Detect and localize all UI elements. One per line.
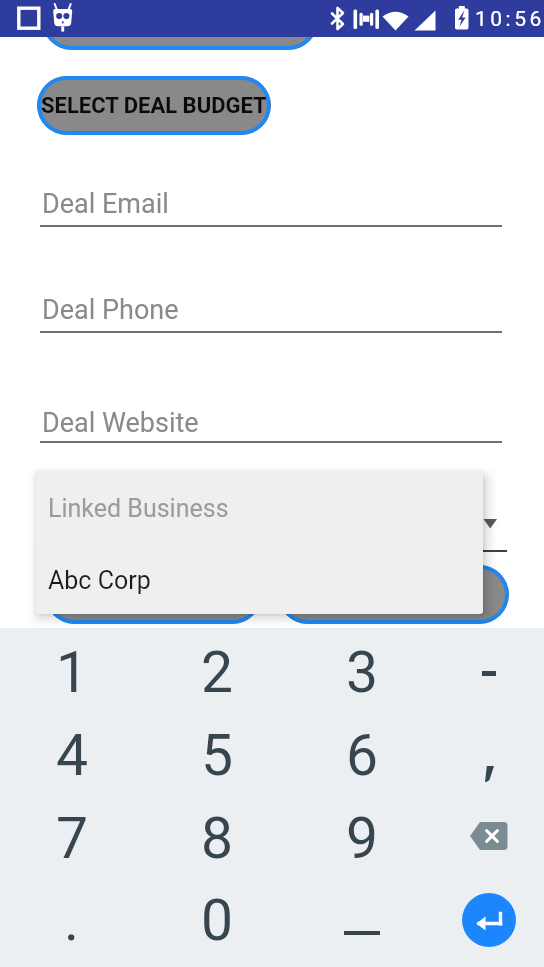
staticText: Linked Business: [48, 494, 229, 523]
staticText: 7: [56, 805, 89, 872]
button[interactable]: [42, 0, 318, 50]
button[interactable]: 7: [17, 796, 127, 880]
staticText: Deal Email: [42, 188, 169, 220]
button[interactable]: 9: [307, 796, 417, 880]
button[interactable]: SELECT DEAL BUDGET: [37, 76, 271, 135]
staticText: 10:56: [475, 7, 544, 32]
staticText: 8: [201, 805, 234, 872]
staticText: 0: [201, 887, 234, 954]
button[interactable]: [434, 713, 544, 797]
button[interactable]: 3: [307, 630, 417, 714]
staticText: 4: [56, 722, 89, 789]
staticText: 5: [201, 722, 234, 789]
button[interactable]: [278, 565, 509, 624]
staticText: SELECT DEAL BUDGET: [41, 93, 267, 119]
button[interactable]: [434, 878, 544, 962]
button[interactable]: Abc Corp: [36, 542, 483, 614]
staticText: Deal Website: [42, 407, 199, 439]
button[interactable]: 4: [17, 713, 127, 797]
button[interactable]: 0: [162, 878, 272, 962]
staticText: 3: [346, 639, 379, 706]
staticText: .: [64, 887, 80, 954]
staticText: 6: [346, 722, 379, 789]
staticText: 2: [201, 639, 234, 706]
button[interactable]: [434, 794, 544, 878]
button[interactable]: 1: [17, 630, 127, 714]
button[interactable]: 8: [162, 796, 272, 880]
staticText: Deal Phone: [42, 294, 179, 326]
staticText: Abc Corp: [48, 566, 151, 595]
button[interactable]: [45, 565, 262, 624]
button[interactable]: [307, 878, 417, 962]
staticText: 1: [56, 639, 89, 706]
button[interactable]: 5: [162, 713, 272, 797]
button[interactable]: [434, 630, 544, 714]
button[interactable]: .: [17, 878, 127, 962]
button[interactable]: 2: [162, 630, 272, 714]
button[interactable]: Linked Business: [36, 471, 483, 542]
staticText: 9: [346, 805, 379, 872]
button[interactable]: 6: [307, 713, 417, 797]
